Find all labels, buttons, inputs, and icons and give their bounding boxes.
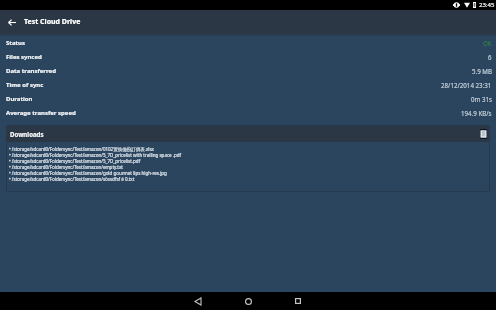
button[interactable]: Show file list xyxy=(478,126,489,141)
button[interactable]: Back xyxy=(176,292,220,310)
button[interactable]: Average transfer speed xyxy=(0,106,496,120)
staticText: Status xyxy=(6,39,26,47)
staticText: Downloads xyxy=(10,130,44,138)
button[interactable]: Data transferred xyxy=(0,64,496,78)
staticText: • /storage/sdcard0/Foldersync/Test/amazo… xyxy=(9,170,167,176)
button[interactable]: Navigate up xyxy=(5,15,19,29)
staticText: 0m 31s xyxy=(471,95,492,103)
staticText: 5.9 MB xyxy=(472,67,492,75)
button[interactable]: Recent apps xyxy=(276,292,320,310)
button[interactable]: Home xyxy=(226,292,270,310)
staticText: Average transfer speed xyxy=(6,109,76,117)
staticText: 28/12/2014 23:31 xyxy=(441,81,492,89)
button[interactable]: Downloads xyxy=(6,125,490,142)
staticText: • /storage/sdcard0/Foldersync/Test/amazo… xyxy=(9,152,182,158)
staticText: 6 xyxy=(488,53,492,61)
button[interactable]: Status xyxy=(0,36,496,50)
staticText: • /storage/sdcard0/Foldersync/Test/amazo… xyxy=(9,164,123,170)
staticText: Data transferred xyxy=(6,67,56,75)
staticText: OK xyxy=(483,39,492,47)
staticText: Time of sync xyxy=(6,81,44,89)
button[interactable]: Duration xyxy=(0,92,496,106)
button[interactable]: Files synced xyxy=(0,50,496,64)
staticText: • /storage/sdcard0/Foldersync/Test/amazo… xyxy=(9,176,135,182)
button[interactable]: Time of sync xyxy=(0,78,496,92)
staticText: • /storage/sdcard0/Foldersync/Test/amazo… xyxy=(9,146,154,152)
staticText: Test Cloud Drive xyxy=(24,17,81,27)
staticText: 23:45 xyxy=(479,1,495,9)
staticText: Files synced xyxy=(6,53,42,61)
staticText: 194.9 KB/s xyxy=(461,109,492,117)
staticText: Duration xyxy=(6,95,33,103)
staticText: • /storage/sdcard0/Foldersync/Test/amazo… xyxy=(9,158,141,164)
